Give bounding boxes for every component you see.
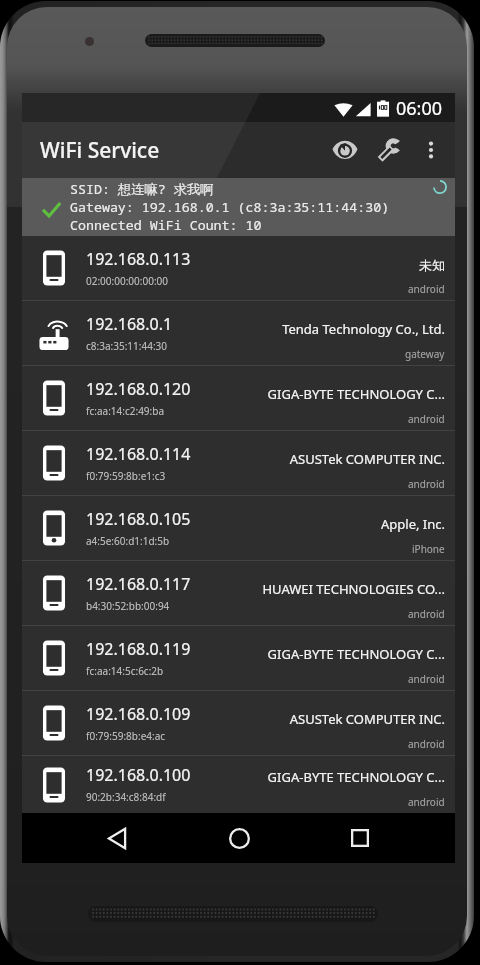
staticText: 192.168.0.100 [86,764,191,786]
staticText: 192.168.0.1 [86,313,173,335]
staticText: b4:30:52:bb:00:94 [86,599,170,613]
staticText: 192.168.0.114 [86,443,191,465]
staticText: Tenda Technology Co., Ltd. [282,320,445,338]
staticText: 192.168.0.109 [86,703,191,725]
staticText: 192.168.0.117 [86,573,191,595]
staticText: 90:2b:34:c8:84:df [86,790,166,804]
staticText: iPhone [412,542,445,556]
button[interactable]: Home [215,814,263,862]
staticText: GIGA-BYTE TECHNOLOGY C... [267,768,445,786]
button[interactable]: 192.168.0.1 [22,301,455,365]
button[interactable]: Watch [323,128,367,172]
staticText: Connected WiFi Count: 10 [70,216,262,234]
button[interactable]: 192.168.0.105 [22,496,455,560]
button[interactable]: Recent apps [336,814,384,862]
button[interactable]: Settings [367,128,411,172]
staticText: android [408,282,445,296]
staticText: SSID: 想连嘛? 求我啊 [70,180,214,198]
staticText: c8:3a:35:11:44:30 [86,339,168,353]
staticText: gateway [405,347,445,361]
staticText: android [408,737,445,751]
staticText: f0:79:59:8b:e1:c3 [86,469,166,483]
staticText: HUAWEI TECHNOLOGIES CO... [262,580,445,598]
button[interactable]: 192.168.0.109 [22,691,455,755]
staticText: fc:aa:14:c2:49:ba [86,404,165,418]
button[interactable]: 192.168.0.113 [22,236,455,300]
staticText: f0:79:59:8b:e4:ac [86,729,166,743]
staticText: 192.168.0.113 [86,248,191,270]
button[interactable]: 192.168.0.119 [22,626,455,690]
staticText: 02:00:00:00:00:00 [86,274,169,288]
staticText: android [408,672,445,686]
staticText: GIGA-BYTE TECHNOLOGY C... [267,385,445,403]
button[interactable]: 192.168.0.100 [22,756,455,813]
staticText: android [408,607,445,621]
staticText: ASUSTek COMPUTER INC. [289,450,445,468]
staticText: 192.168.0.120 [86,378,191,400]
button[interactable]: 192.168.0.117 [22,561,455,625]
staticText: 未知 [419,257,445,273]
staticText: android [408,795,445,809]
staticText: GIGA-BYTE TECHNOLOGY C... [267,645,445,663]
staticText: 192.168.0.105 [86,508,191,530]
staticText: fc:aa:14:5c:6c:2b [86,664,164,678]
button[interactable]: More options [411,130,451,170]
staticText: a4:5e:60:d1:1d:5b [86,534,170,548]
button[interactable]: Back [93,814,141,862]
button[interactable]: 192.168.0.114 [22,431,455,495]
staticText: 192.168.0.119 [86,638,191,660]
staticText: WiFi Service [40,136,160,165]
staticText: android [408,477,445,491]
button[interactable]: 192.168.0.120 [22,366,455,430]
staticText: android [408,412,445,426]
staticText: Gateway: 192.168.0.1 (c8:3a:35:11:44:30) [70,198,390,216]
staticText: ASUSTek COMPUTER INC. [289,710,445,728]
staticText: 06:00 [396,96,443,121]
staticText: Apple, Inc. [380,515,445,533]
